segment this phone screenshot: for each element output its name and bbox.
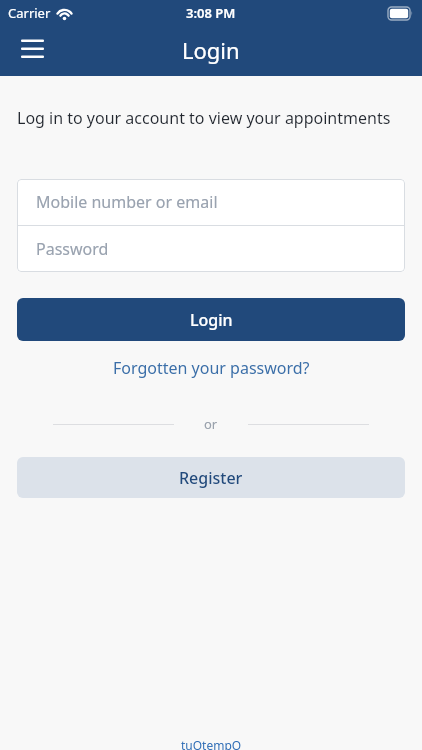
staticText: or — [204, 415, 218, 433]
staticText: Password — [36, 238, 109, 260]
staticText: Forgotten your password? — [113, 357, 310, 379]
staticText: tuOtempO — [181, 737, 242, 750]
button[interactable]: Login — [17, 298, 405, 341]
button[interactable]: Password — [17, 226, 405, 272]
staticText: Register — [179, 467, 243, 489]
button[interactable]: tuOtempO — [181, 737, 242, 750]
button[interactable]: Register — [17, 457, 405, 498]
button[interactable]: Forgotten your password? — [109, 353, 314, 383]
staticText: Log in to your account to view your appo… — [17, 107, 391, 129]
button[interactable] — [13, 30, 52, 66]
staticText: Login — [190, 309, 233, 331]
staticText: Carrier — [8, 4, 51, 22]
button[interactable]: Mobile number or email — [17, 179, 405, 225]
staticText: 3:08 PM — [186, 4, 236, 22]
staticText: Login — [182, 35, 240, 65]
staticText: Mobile number or email — [36, 191, 218, 213]
